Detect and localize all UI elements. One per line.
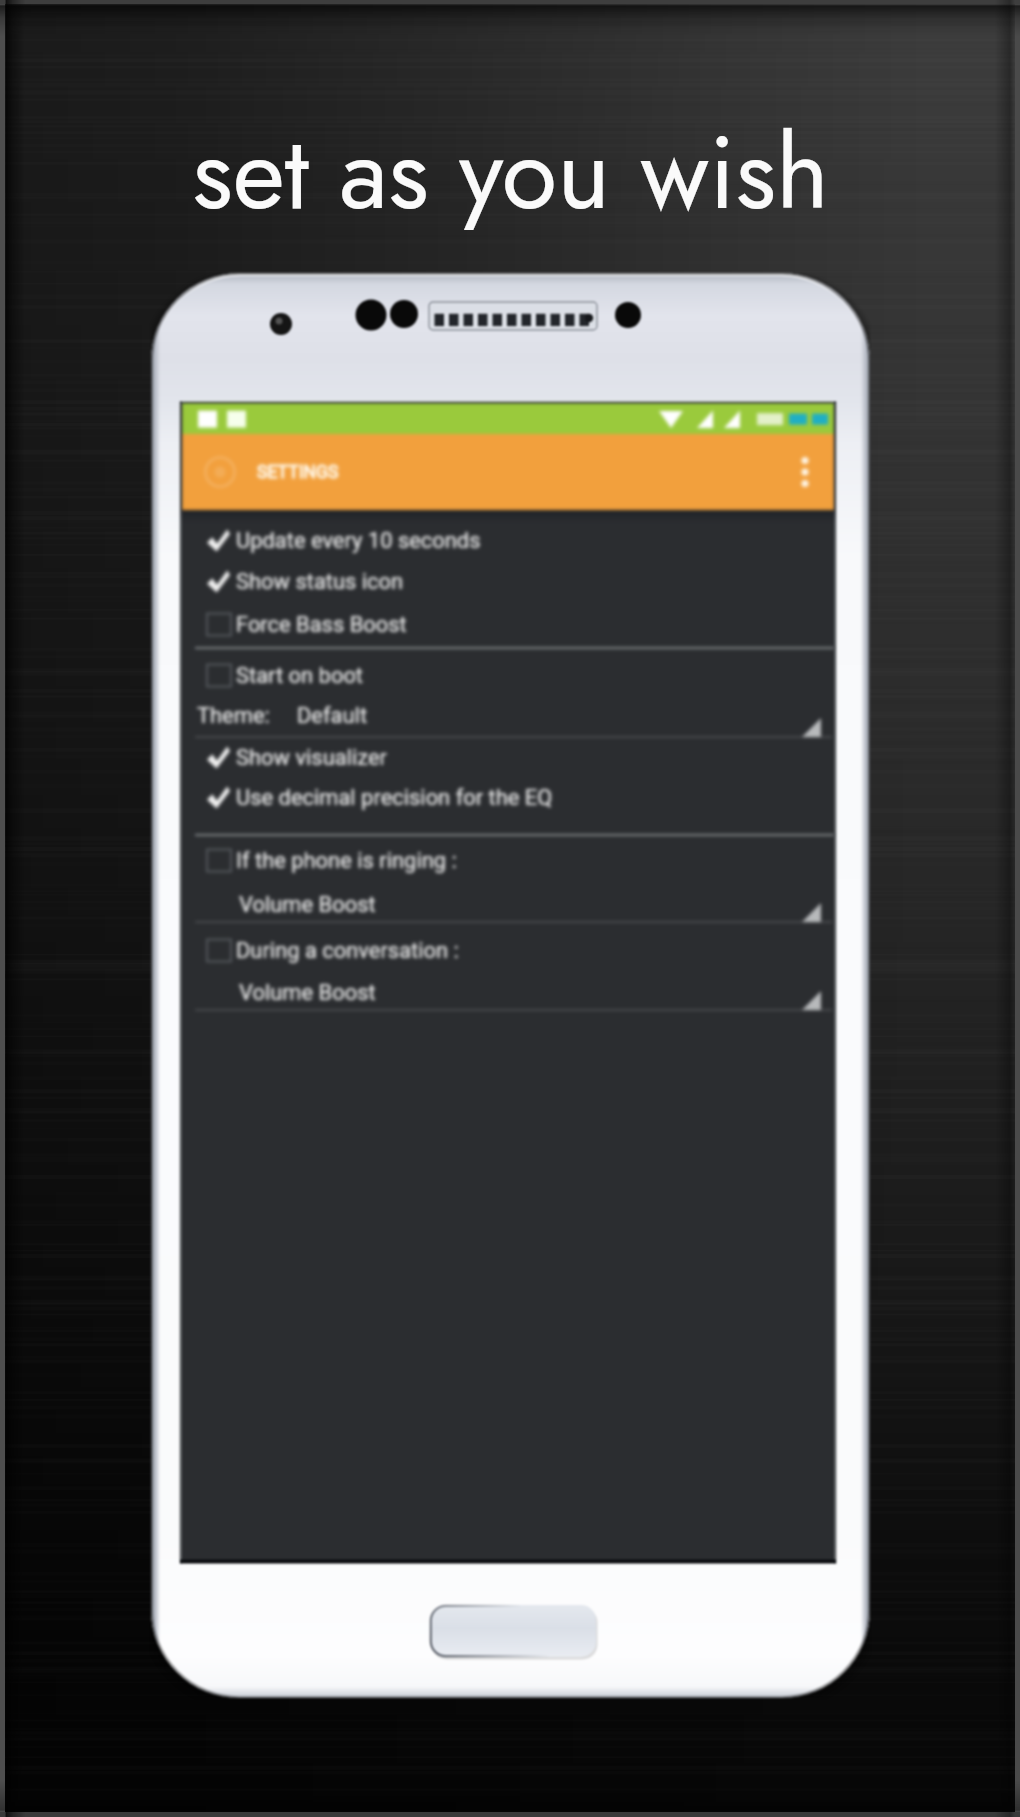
staticText: Theme: bbox=[197, 703, 270, 729]
button[interactable]: Update every 10 seconds bbox=[182, 520, 834, 561]
button[interactable]: Start on boot bbox=[182, 655, 834, 696]
staticText: Use decimal precision for the EQ bbox=[236, 785, 553, 811]
staticText: Show visualizer bbox=[236, 745, 387, 771]
button[interactable]: Show status icon bbox=[182, 561, 834, 602]
button[interactable]: Theme: bbox=[182, 694, 834, 738]
staticText: Volume Boost bbox=[239, 892, 376, 918]
button[interactable]: Volume Boost bbox=[182, 884, 834, 926]
staticText: Show status icon bbox=[236, 569, 404, 595]
button[interactable]: Use decimal precision for the EQ bbox=[182, 777, 834, 818]
button[interactable]: Show visualizer bbox=[182, 737, 834, 778]
staticText: set as you wish bbox=[192, 100, 829, 246]
button[interactable]: During a conversation : bbox=[182, 930, 834, 971]
staticText: Volume Boost bbox=[239, 980, 376, 1006]
staticText: SETTINGS bbox=[257, 462, 339, 483]
button[interactable]: Force Bass Boost bbox=[182, 604, 834, 645]
staticText: Update every 10 seconds bbox=[236, 528, 481, 554]
staticText: If the phone is ringing : bbox=[236, 848, 457, 874]
button[interactable]: Volume Boost bbox=[182, 972, 834, 1014]
staticText: During a conversation : bbox=[236, 938, 459, 964]
button[interactable]: Home bbox=[430, 1605, 596, 1657]
button[interactable]: If the phone is ringing : bbox=[182, 840, 834, 881]
staticText: Force Bass Boost bbox=[236, 612, 407, 638]
button[interactable]: More options bbox=[780, 434, 830, 510]
staticText: Start on boot bbox=[236, 663, 364, 689]
staticText: Default bbox=[297, 703, 368, 729]
button[interactable]: SETTINGS bbox=[182, 434, 834, 510]
